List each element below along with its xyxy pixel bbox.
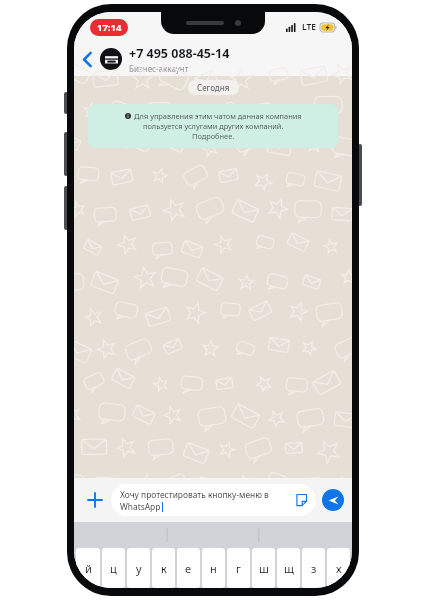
button[interactable]: г xyxy=(227,548,250,588)
staticText: ш xyxy=(259,561,269,576)
staticText: Подробнее. xyxy=(192,131,235,141)
button[interactable]: х xyxy=(327,548,350,588)
staticText: щ xyxy=(284,561,294,576)
staticText: н xyxy=(210,561,217,576)
staticText: пользуется услугами других компаний. xyxy=(143,121,284,131)
staticText: з xyxy=(311,561,317,576)
button[interactable]: Send xyxy=(322,489,344,511)
staticText: Для управления этим чатом данная компани… xyxy=(134,111,302,121)
button[interactable]: Back xyxy=(74,42,100,76)
button[interactable]: Stickers xyxy=(292,491,310,509)
button[interactable]: ц xyxy=(102,548,125,588)
staticText: 17:14 xyxy=(97,21,122,34)
staticText: ц xyxy=(110,561,117,576)
button[interactable]: й xyxy=(76,548,100,588)
staticText: к xyxy=(161,561,167,576)
staticText: г xyxy=(236,561,241,576)
button[interactable]: у xyxy=(127,548,150,588)
staticText: Бизнес-аккаунт xyxy=(129,63,189,74)
button[interactable]: +7 495 088-45-14 xyxy=(100,42,344,76)
staticText: +7 495 088-45-14 xyxy=(129,45,230,62)
staticText: WhatsApp xyxy=(120,501,161,512)
button[interactable]: Хочу протестировать кнопку-меню в xyxy=(111,484,316,516)
button[interactable]: з xyxy=(302,548,325,588)
staticText: LTE xyxy=(302,21,317,33)
button[interactable]: ш xyxy=(252,548,275,588)
staticText: Хочу протестировать кнопку-меню в xyxy=(120,489,269,500)
button[interactable]: н xyxy=(202,548,225,588)
button[interactable]: Для управления этим чатом данная компани… xyxy=(88,104,338,148)
staticText: е xyxy=(185,561,192,576)
staticText: Сегодня xyxy=(197,82,230,93)
button[interactable]: Attach xyxy=(82,487,108,513)
button[interactable]: щ xyxy=(277,548,300,588)
button[interactable]: е xyxy=(177,548,200,588)
staticText: й xyxy=(85,561,92,576)
button[interactable]: к xyxy=(152,548,175,588)
staticText: у xyxy=(136,561,142,576)
staticText: х xyxy=(336,561,342,576)
